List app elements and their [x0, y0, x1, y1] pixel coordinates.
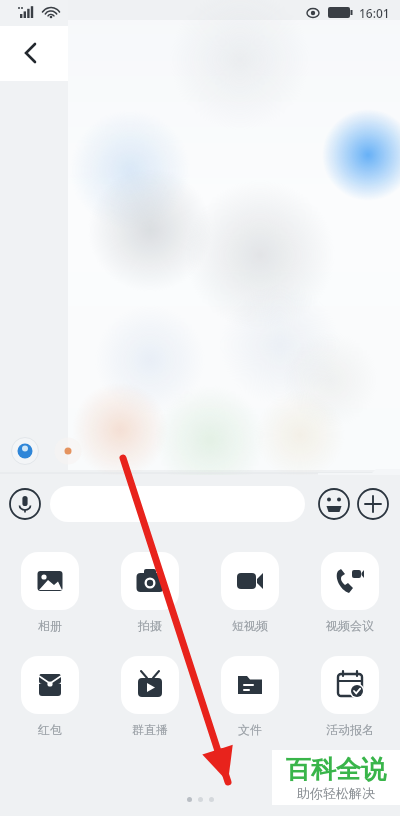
staticText: 群直播 — [132, 722, 168, 737]
button[interactable]: Emoji — [314, 484, 354, 524]
staticText: 拍摄 — [138, 618, 162, 633]
staticText: 活动报名 — [326, 722, 374, 737]
button[interactable]: 拍摄 — [100, 552, 200, 633]
staticText: 红包 — [38, 722, 62, 737]
staticText: 相册 — [38, 618, 62, 633]
button[interactable]: 短视频 — [200, 552, 300, 633]
button[interactable]: 相册 — [0, 552, 100, 633]
button[interactable]: 群直播 — [100, 656, 200, 737]
button[interactable]: Back — [6, 30, 52, 76]
button[interactable]: Voice input — [5, 484, 45, 524]
staticText: 助你轻松解决 — [297, 785, 375, 801]
staticText: 视频会议 — [326, 618, 374, 633]
button[interactable] — [50, 486, 305, 522]
button[interactable]: 视频会议 — [300, 552, 400, 633]
staticText: 文件 — [238, 722, 262, 737]
button[interactable]: More options — [353, 484, 393, 524]
staticText: 16:01 — [359, 5, 390, 21]
staticText: 百科全说 — [286, 754, 386, 785]
button[interactable]: 红包 — [0, 656, 100, 737]
button[interactable]: 活动报名 — [300, 656, 400, 737]
button[interactable]: 文件 — [200, 656, 300, 737]
staticText: 短视频 — [232, 618, 268, 633]
